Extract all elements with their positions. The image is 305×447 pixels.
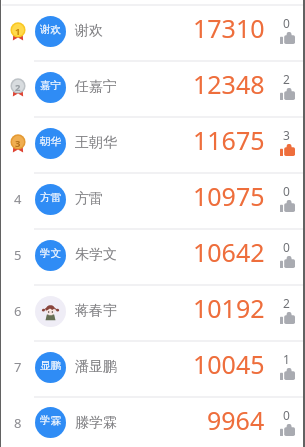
staticText: 2: [283, 295, 290, 311]
button[interactable]: Like: [276, 395, 301, 447]
button[interactable]: 6: [0, 284, 305, 340]
button[interactable]: 4: [0, 172, 305, 228]
staticText: 10045: [193, 347, 265, 381]
button[interactable]: 1: [0, 4, 305, 60]
button[interactable]: Like: [276, 283, 301, 339]
staticText: 1: [283, 351, 290, 367]
staticText: 显鹏: [40, 359, 61, 372]
button[interactable]: Like: [276, 227, 301, 283]
staticText: 17310: [193, 11, 265, 45]
button[interactable]: 3: [0, 116, 305, 172]
staticText: 5: [14, 246, 22, 264]
button[interactable]: Like: [276, 339, 301, 395]
staticText: 0: [283, 15, 290, 31]
staticText: 王朝华: [75, 134, 117, 152]
staticText: 嘉宁: [40, 79, 61, 92]
staticText: 8: [14, 414, 22, 432]
staticText: 方雷: [75, 190, 103, 208]
staticText: 3: [15, 137, 21, 150]
staticText: 3: [283, 127, 290, 143]
staticText: 2: [283, 71, 290, 87]
button[interactable]: Like: [276, 171, 301, 227]
staticText: 方雷: [40, 191, 61, 204]
staticText: 0: [283, 407, 290, 423]
staticText: 10642: [193, 235, 265, 269]
staticText: 潘显鹏: [75, 358, 117, 376]
staticText: 11675: [193, 123, 265, 157]
staticText: 0: [283, 239, 290, 255]
staticText: 6: [14, 302, 22, 320]
button[interactable]: 7: [0, 340, 305, 396]
button[interactable]: 5: [0, 228, 305, 284]
staticText: 7: [14, 358, 22, 376]
staticText: 学文: [40, 247, 61, 260]
staticText: 10975: [193, 179, 265, 213]
staticText: 2: [15, 81, 21, 94]
staticText: 朝华: [40, 135, 61, 148]
staticText: 任嘉宁: [75, 78, 117, 96]
staticText: 9964: [207, 403, 265, 437]
button[interactable]: 2: [0, 60, 305, 116]
staticText: 蒋春宇: [75, 302, 117, 320]
staticText: 谢欢: [75, 22, 103, 40]
button[interactable]: Like: [276, 3, 301, 59]
staticText: 谢欢: [40, 23, 61, 36]
button[interactable]: 8: [0, 396, 305, 447]
staticText: 10192: [193, 291, 265, 325]
staticText: 4: [14, 190, 22, 208]
button[interactable]: Like: [276, 59, 301, 115]
staticText: 学霖: [40, 414, 61, 427]
staticText: 滕学霖: [75, 414, 117, 432]
staticText: 0: [283, 183, 290, 199]
staticText: 12348: [193, 67, 265, 101]
staticText: 朱学文: [75, 246, 117, 264]
button[interactable]: Like: [276, 115, 301, 171]
staticText: 1: [15, 25, 21, 38]
